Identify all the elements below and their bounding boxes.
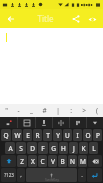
staticText: Title: [22, 13, 69, 24]
button[interactable]: Share: [69, 12, 83, 26]
staticText: D: [30, 144, 35, 153]
button[interactable]: ?123: [1, 168, 16, 182]
staticText: T: [46, 131, 50, 140]
staticText: :: [70, 106, 72, 115]
staticText: E: [26, 131, 30, 140]
button[interactable]: Keyboard tool 2: [18, 117, 35, 128]
staticText: |: [56, 106, 60, 115]
staticText: W: [14, 131, 21, 140]
staticText: C: [40, 157, 45, 166]
button[interactable]: O: [83, 129, 92, 141]
button[interactable]: #: [38, 104, 51, 117]
staticText: K: [81, 144, 86, 153]
staticText: S: [19, 144, 23, 153]
button[interactable]: Back: [4, 12, 17, 25]
staticText: ": [5, 106, 8, 115]
staticText: Z: [20, 157, 24, 166]
button[interactable]: R: [33, 129, 42, 141]
staticText: Q: [3, 131, 9, 140]
button[interactable]: Keyboard tool 1: [0, 117, 17, 128]
staticText: (: [96, 106, 98, 115]
staticText: Y: [56, 131, 60, 140]
staticText: -: [17, 106, 20, 115]
staticText: R: [35, 131, 40, 140]
button[interactable]: Keyboard tool 3: [36, 117, 52, 128]
button[interactable]: _: [25, 104, 38, 117]
button[interactable]: A: [5, 142, 15, 154]
staticText: U: [65, 131, 70, 140]
button[interactable]: B: [58, 155, 67, 167]
staticText: J: [73, 144, 75, 153]
button[interactable]: D: [27, 142, 37, 154]
button[interactable]: S: [16, 142, 26, 154]
button[interactable]: Shift: [1, 155, 16, 167]
button[interactable]: E: [23, 129, 32, 141]
staticText: V: [51, 157, 55, 166]
button[interactable]: :: [64, 104, 77, 117]
staticText: .: [81, 171, 83, 179]
button[interactable]: H: [59, 142, 68, 154]
staticText: L: [92, 144, 96, 153]
button[interactable]: C: [38, 155, 47, 167]
button[interactable]: Z: [17, 155, 27, 167]
staticText: A: [8, 144, 13, 153]
button[interactable]: P: [93, 129, 102, 141]
button[interactable]: Keyboard tool 5: [70, 117, 86, 128]
button[interactable]: Preview: [85, 12, 99, 26]
staticText: >: [82, 106, 86, 115]
staticText: N: [70, 157, 75, 166]
button[interactable]: F: [38, 142, 48, 154]
staticText: I: [76, 131, 79, 140]
button[interactable]: >: [77, 104, 90, 117]
button[interactable]: Backspace: [88, 155, 102, 167]
button[interactable]: Y: [53, 129, 62, 141]
button[interactable]: T: [43, 129, 52, 141]
button[interactable]: |: [51, 104, 64, 117]
button[interactable]: .: [78, 168, 86, 182]
staticText: X: [31, 157, 35, 166]
button[interactable]: U: [63, 129, 72, 141]
button[interactable]: J: [69, 142, 78, 154]
button[interactable]: Keyboard tool 6: [87, 117, 103, 128]
staticText: H: [61, 144, 66, 153]
staticText: _: [30, 106, 33, 115]
button[interactable]: N: [68, 155, 77, 167]
staticText: ?123: [4, 172, 14, 178]
staticText: SwiftKey: [45, 177, 59, 182]
button[interactable]: K: [79, 142, 88, 154]
button[interactable]: L: [89, 142, 98, 154]
button[interactable]: ,: [17, 168, 25, 182]
staticText: P: [96, 131, 100, 140]
button[interactable]: I: [73, 129, 82, 141]
button[interactable]: Q: [1, 129, 11, 141]
staticText: G: [51, 144, 56, 153]
staticText: #: [42, 106, 47, 115]
button[interactable]: X: [28, 155, 37, 167]
button[interactable]: W: [12, 129, 22, 141]
button[interactable]: (: [90, 104, 103, 117]
staticText: O: [85, 131, 91, 140]
button[interactable]: Keyboard tool 4: [53, 117, 69, 128]
staticText: B: [60, 157, 65, 166]
button[interactable]: M: [78, 155, 87, 167]
button[interactable]: Enter: [87, 168, 102, 182]
button[interactable]: -: [12, 104, 25, 117]
staticText: F: [41, 144, 45, 153]
button[interactable]: G: [49, 142, 58, 154]
button[interactable]: ": [0, 104, 12, 117]
staticText: M: [80, 157, 86, 166]
button[interactable]: V: [48, 155, 57, 167]
button[interactable]: Space: [26, 168, 77, 182]
staticText: ,: [20, 171, 22, 179]
